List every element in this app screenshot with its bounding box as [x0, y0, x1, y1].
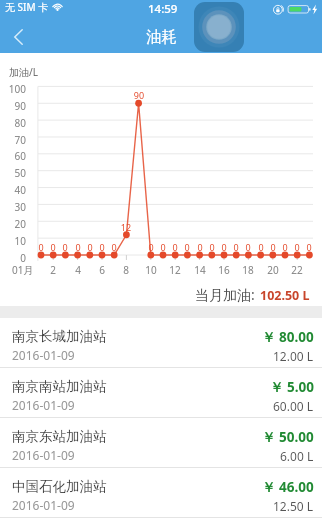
- button[interactable]: AssistiveTouch: [194, 2, 244, 52]
- staticText: 10: [131, 263, 171, 277]
- staticText: 0: [177, 241, 197, 253]
- staticText: 0: [43, 241, 63, 253]
- staticText: 2016-01-09: [12, 347, 75, 363]
- staticText: 100: [0, 82, 26, 96]
- staticText: 0: [104, 241, 124, 253]
- staticText: 30: [0, 200, 26, 214]
- staticText: 2016-01-09: [12, 497, 75, 513]
- staticText: 0: [165, 241, 185, 253]
- staticText: ￥ 46.00: [262, 478, 314, 496]
- staticText: ￥ 5.00: [270, 378, 314, 396]
- staticText: ￥ 80.00: [262, 328, 314, 346]
- staticText: 南京南站加油站: [12, 378, 107, 395]
- staticText: 2016-01-09: [12, 447, 75, 463]
- staticText: 20: [0, 217, 26, 231]
- staticText: 22: [277, 263, 317, 277]
- staticText: 2: [33, 263, 73, 277]
- staticText: 18: [228, 263, 268, 277]
- staticText: 01月: [12, 263, 52, 277]
- staticText: 6.00 L: [280, 448, 314, 464]
- staticText: 12.00 L: [273, 348, 314, 364]
- staticText: 4: [58, 263, 98, 277]
- staticText: 0: [238, 241, 258, 253]
- staticText: 90: [129, 89, 149, 101]
- staticText: 40: [0, 183, 26, 197]
- staticText: 0: [263, 241, 283, 253]
- staticText: 0: [92, 241, 112, 253]
- staticText: 油耗: [146, 27, 177, 47]
- staticText: 0: [214, 241, 234, 253]
- staticText: 0: [287, 241, 307, 253]
- staticText: 当月加油:: [195, 285, 255, 304]
- staticText: 80: [0, 116, 26, 130]
- staticText: 无 SIM 卡: [5, 0, 49, 14]
- staticText: 0: [31, 241, 51, 253]
- staticText: 2016-01-09: [12, 397, 75, 413]
- staticText: 0: [80, 241, 100, 253]
- staticText: 6: [82, 263, 122, 277]
- staticText: 0: [55, 241, 75, 253]
- staticText: 20: [253, 263, 293, 277]
- button[interactable]: 南京东站加油站: [0, 418, 322, 468]
- staticText: 14: [180, 263, 220, 277]
- staticText: 14:59: [148, 1, 178, 17]
- staticText: 0: [202, 241, 222, 253]
- staticText: 12.50 L: [273, 498, 314, 514]
- staticText: 0: [251, 241, 271, 253]
- staticText: 南京东站加油站: [12, 428, 107, 445]
- staticText: 0: [68, 241, 88, 253]
- staticText: 12: [155, 263, 195, 277]
- staticText: 60.00 L: [273, 398, 314, 414]
- staticText: 0: [275, 241, 295, 253]
- staticText: ￥ 50.00: [262, 428, 314, 446]
- staticText: 0: [141, 241, 161, 253]
- staticText: 加油/L: [9, 65, 38, 79]
- button[interactable]: Back: [2, 20, 34, 53]
- staticText: 0: [153, 241, 173, 253]
- staticText: 70: [0, 133, 26, 147]
- button[interactable]: 南京南站加油站: [0, 368, 322, 418]
- button[interactable]: 南京长城加油站: [0, 318, 322, 368]
- staticText: 10: [0, 234, 26, 248]
- staticText: 16: [204, 263, 244, 277]
- staticText: 50: [0, 166, 26, 180]
- staticText: 0: [226, 241, 246, 253]
- button[interactable]: 中国石化加油站: [0, 468, 322, 518]
- staticText: 0: [0, 251, 26, 265]
- staticText: 中国石化加油站: [12, 478, 107, 495]
- staticText: 8: [106, 263, 146, 277]
- staticText: 102.50 L: [260, 287, 310, 304]
- staticText: 0: [299, 241, 319, 253]
- staticText: 60: [0, 149, 26, 163]
- staticText: 南京长城加油站: [12, 328, 107, 345]
- staticText: 0: [190, 241, 210, 253]
- staticText: 12: [116, 221, 136, 233]
- staticText: 90: [0, 99, 26, 113]
